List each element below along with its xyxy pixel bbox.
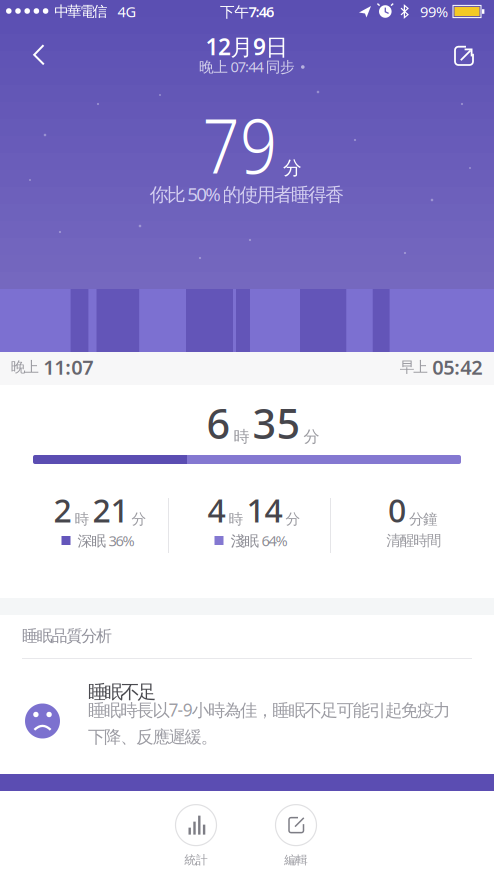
staticText: 11:07 — [43, 354, 93, 380]
staticText: 4 — [207, 489, 225, 531]
staticText: 79 — [197, 95, 283, 194]
staticText: 淺眠 64% — [230, 531, 287, 550]
staticText: 分鐘 — [409, 510, 438, 528]
button[interactable]: Share — [442, 33, 486, 77]
staticText: 分 — [131, 510, 146, 528]
staticText: 睡眠不足 — [88, 680, 156, 703]
button[interactable]: Back — [17, 33, 61, 77]
button[interactable]: 統計 — [175, 805, 216, 867]
staticText: 深眠 36% — [77, 531, 134, 550]
staticText: 0 — [388, 489, 406, 531]
staticText: 編輯 — [284, 853, 308, 867]
staticText: 時 — [228, 510, 243, 528]
staticText: 時 — [74, 510, 89, 528]
staticText: 分 — [283, 156, 302, 179]
staticText: 4G — [117, 2, 136, 21]
staticText: 分 — [303, 427, 319, 446]
staticText: 35 — [252, 396, 300, 450]
staticText: 21 — [92, 489, 128, 531]
staticText: 早上 — [400, 358, 428, 376]
button[interactable]: 編輯 — [275, 805, 316, 867]
staticText: 05:42 — [432, 354, 482, 380]
staticText: 99% — [420, 2, 448, 21]
staticText: 時 — [233, 427, 249, 446]
staticText: 清醒時間 — [386, 531, 442, 549]
staticText: 14 — [246, 489, 282, 531]
staticText: 下午7:46 — [220, 2, 274, 21]
staticText: 晚上 — [11, 358, 39, 376]
staticText: 你比 50% 的使用者睡得香 — [150, 182, 344, 206]
staticText: 睡眠時長以7-9小時為佳，睡眠不足可能引起免疫力 — [88, 698, 450, 721]
staticText: 12月9日 — [205, 31, 288, 61]
staticText: 分 — [285, 510, 300, 528]
staticText: 下降、反應遲緩。 — [88, 726, 218, 748]
staticText: 統計 — [184, 853, 208, 867]
staticText: 中華電信 — [54, 2, 108, 20]
staticText: 2 — [53, 489, 71, 531]
staticText: 晚上 07:44 同步 — [199, 57, 295, 76]
staticText: 睡眠品質分析 — [22, 626, 112, 646]
staticText: 6 — [206, 396, 230, 450]
